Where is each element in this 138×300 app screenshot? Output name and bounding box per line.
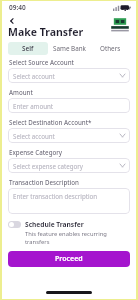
button[interactable]: Others	[91, 42, 130, 55]
staticText: Select account	[13, 132, 55, 140]
button[interactable]: Enter transaction description	[8, 188, 130, 214]
staticText: Select Destination Account*	[9, 118, 92, 126]
button[interactable]: Self	[8, 42, 48, 55]
staticText: Amount	[9, 88, 33, 96]
button[interactable]: Select account	[8, 128, 130, 143]
staticText: Enter transaction description	[13, 192, 98, 200]
staticText: Transaction Description	[9, 178, 79, 186]
staticText: Select expense category	[13, 162, 84, 170]
button[interactable]: Select account	[8, 68, 130, 83]
staticText: This feature enables recurring transfers	[25, 230, 130, 245]
staticText: Enter amount	[13, 102, 54, 109]
staticText: Select account	[13, 72, 55, 80]
staticText: Make Transfer	[8, 25, 84, 39]
button[interactable]: Proceed	[8, 251, 130, 267]
button[interactable]: Same Bank	[50, 42, 89, 55]
button[interactable]: Select expense category	[8, 158, 130, 173]
staticText: Others	[100, 44, 121, 53]
button[interactable]: Enter amount	[8, 98, 130, 113]
button[interactable]: Bank logo	[109, 16, 131, 38]
staticText: Same Bank	[53, 44, 86, 53]
staticText: 09:40	[9, 3, 26, 12]
staticText: Expense Category	[9, 148, 63, 156]
staticText: Select Source Account	[9, 58, 74, 66]
other: Schedule Transfer toggle	[8, 221, 21, 228]
button[interactable]: Schedule Transfer toggle	[8, 220, 130, 245]
staticText: Schedule Transfer	[25, 220, 84, 229]
button[interactable]: Back	[6, 15, 18, 27]
staticText: Proceed	[55, 254, 83, 264]
staticText: Self	[22, 44, 34, 53]
